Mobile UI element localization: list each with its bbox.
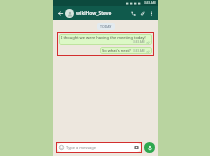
button[interactable]: Call bbox=[129, 9, 138, 18]
staticText: I thought we were having the meeting tod… bbox=[61, 35, 146, 40]
button[interactable]: wikiHow_Steve bbox=[76, 10, 129, 17]
button[interactable]: So what's next? bbox=[100, 47, 152, 54]
button[interactable]: Record voice message bbox=[144, 142, 155, 153]
staticText: 3:33 AM bbox=[144, 1, 156, 5]
staticText: 3:33 AM bbox=[133, 49, 145, 53]
staticText: TODAY bbox=[100, 24, 112, 29]
button[interactable]: More options bbox=[147, 9, 155, 17]
staticText: wikiHow_Steve bbox=[76, 10, 112, 17]
button[interactable]: Attach bbox=[138, 9, 147, 18]
staticText: So what's next? bbox=[102, 48, 131, 53]
staticText: 3:33 AM bbox=[133, 40, 145, 44]
button[interactable]: Type a message bbox=[57, 143, 141, 152]
button[interactable]: I thought we were having the meeting tod… bbox=[59, 34, 152, 45]
staticText: Type a message bbox=[66, 145, 134, 150]
button[interactable]: Back bbox=[56, 9, 64, 17]
